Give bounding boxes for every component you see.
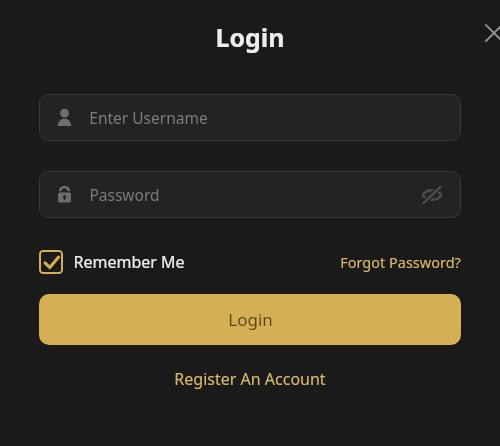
staticText: Register An Account: [174, 368, 326, 390]
button[interactable]: Password: [39, 171, 461, 218]
button[interactable]: Register An Account: [166, 364, 334, 394]
button[interactable]: Login: [39, 294, 461, 345]
staticText: Login: [228, 308, 273, 331]
staticText: Password: [89, 184, 160, 205]
staticText: Forgot Password?: [340, 252, 461, 272]
button[interactable]: Enter Username: [39, 94, 461, 141]
button[interactable]: Close: [474, 13, 500, 53]
staticText: Enter Username: [89, 107, 208, 128]
staticText: Login: [215, 20, 285, 54]
staticText: Remember Me: [73, 251, 185, 273]
button[interactable]: Forgot Password?: [340, 248, 461, 276]
button[interactable]: Show password: [419, 182, 445, 208]
button[interactable]: Remember Me: [39, 246, 185, 278]
